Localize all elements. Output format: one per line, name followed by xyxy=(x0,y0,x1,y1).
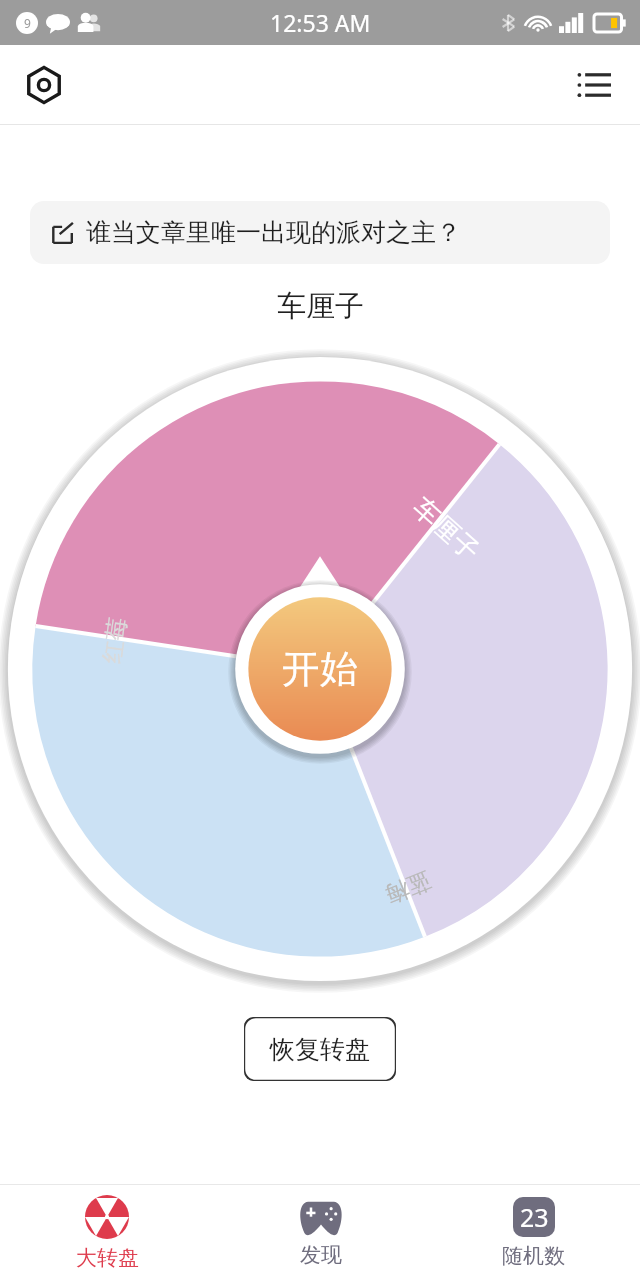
staticText: 23 xyxy=(520,1200,549,1234)
staticText: 车厘子 xyxy=(277,288,364,325)
button[interactable]: 恢复转盘 xyxy=(244,1017,396,1081)
button[interactable]: Settings xyxy=(16,57,72,113)
staticText: 车厘子 xyxy=(406,491,486,568)
button[interactable]: Menu xyxy=(566,57,622,113)
staticText: 大转盘 xyxy=(76,1245,139,1271)
staticText: 红莓 xyxy=(97,616,132,665)
staticText: 开始 xyxy=(282,645,358,693)
button[interactable]: 谁当文章里唯一出现的派对之主？ xyxy=(30,201,610,264)
button[interactable]: 开始 xyxy=(234,583,406,755)
button[interactable]: 大转盘 xyxy=(0,1185,214,1280)
staticText: 9 xyxy=(24,15,31,31)
staticText: 谁当文章里唯一出现的派对之主？ xyxy=(86,217,461,248)
staticText: 随机数 xyxy=(502,1243,565,1269)
staticText: 恢复转盘 xyxy=(270,1034,370,1065)
staticText: 蓝梅 xyxy=(381,865,435,909)
button[interactable]: 发现 xyxy=(214,1185,427,1280)
button[interactable]: 23 xyxy=(427,1185,640,1280)
staticText: 发现 xyxy=(300,1242,342,1268)
staticText: 12:53 AM xyxy=(270,7,371,38)
